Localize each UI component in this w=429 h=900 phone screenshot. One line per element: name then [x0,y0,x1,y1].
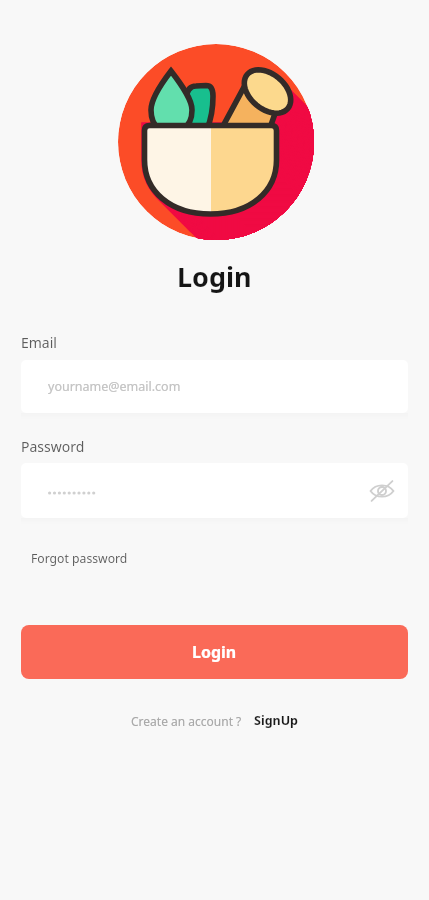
button[interactable]: Login [21,625,408,679]
button[interactable]: Show password [365,474,399,508]
staticText: Password [21,437,85,456]
staticText: yourname@email.com [48,378,181,395]
staticText: Email [21,333,57,352]
staticText: Create an account ? [131,713,242,729]
button[interactable]: Forgot password [31,550,128,567]
staticText: Login [177,258,252,295]
button[interactable]: SignUp [254,712,299,729]
button[interactable]: yourname@email.com [21,360,408,413]
staticText: Login [192,641,237,663]
button[interactable]: Show password [21,463,408,518]
